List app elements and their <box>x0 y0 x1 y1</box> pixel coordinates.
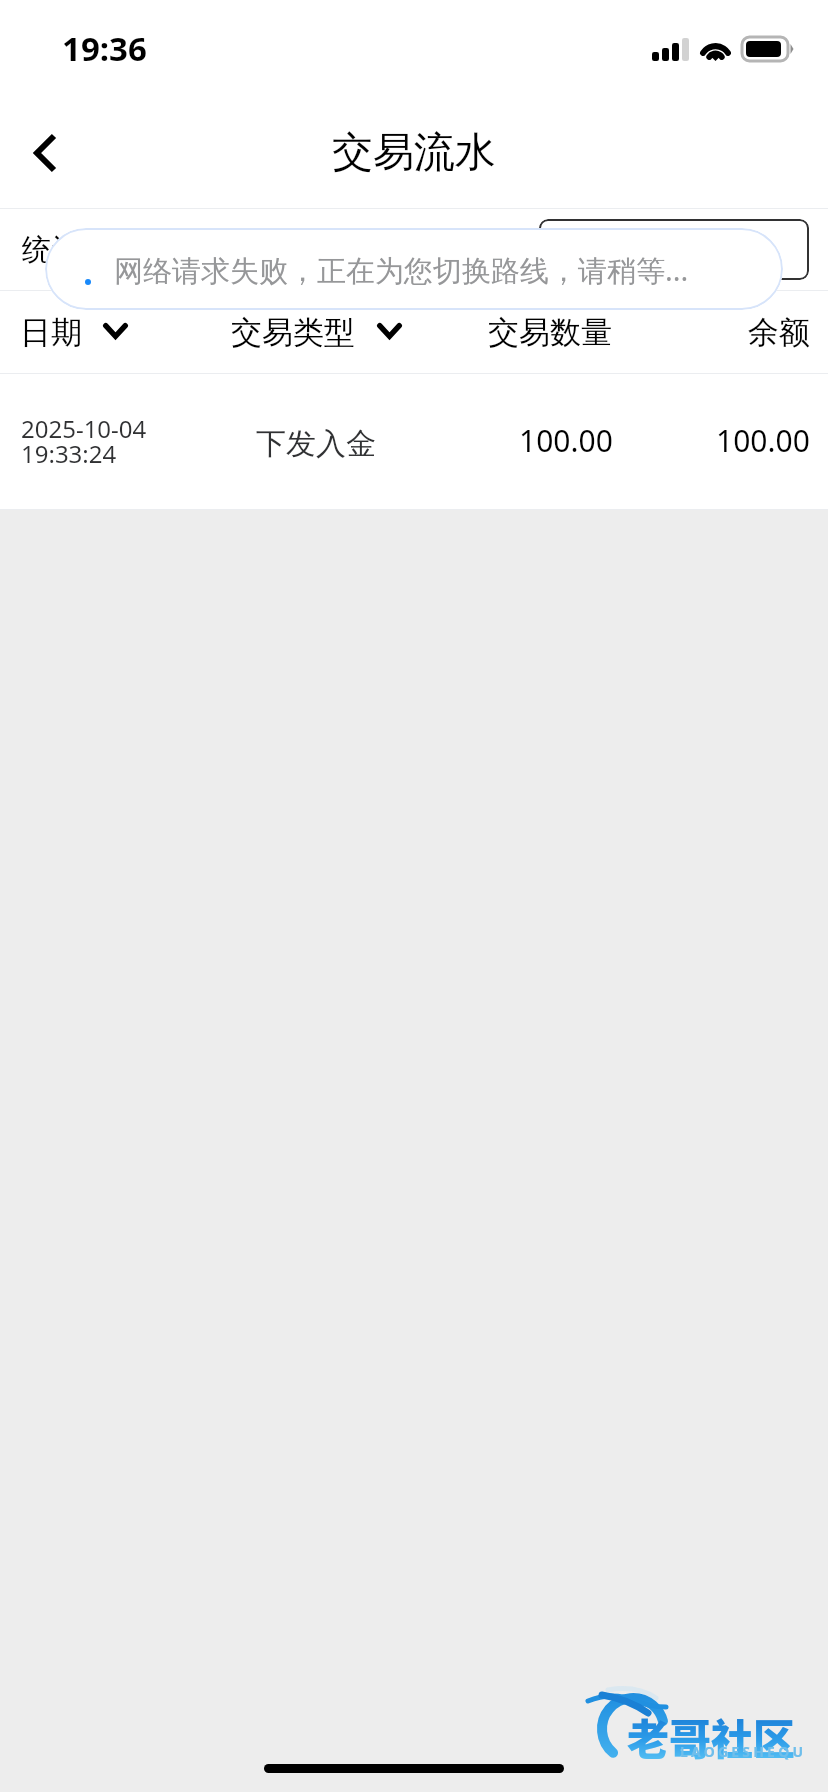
staticText: 交易类型 <box>231 313 355 352</box>
staticText: 19:36 <box>62 26 147 71</box>
staticText: 网络请求失败，正在为您切换路线，请稍等... <box>114 250 689 290</box>
staticText: 100.00 <box>519 420 613 461</box>
staticText: 下发入金 <box>256 425 376 463</box>
staticText: 老哥社区 <box>627 1706 796 1767</box>
staticText: 余额 <box>748 313 810 352</box>
button[interactable]: 日期 <box>20 313 128 352</box>
button[interactable] <box>539 219 809 280</box>
staticText: 统计 <box>22 231 82 269</box>
staticText: 100.00 <box>716 420 810 461</box>
button[interactable]: 2025-10-04 19:33:24 <box>0 374 828 509</box>
staticText: LAOGESHEQU <box>680 1742 807 1761</box>
button[interactable]: 交易类型 <box>231 313 402 352</box>
staticText: 交易流水 <box>332 127 496 179</box>
staticText: 日期 <box>20 313 82 352</box>
staticText: 交易数量 <box>488 313 612 352</box>
button[interactable]: Back <box>6 117 82 193</box>
staticText: 2025-10-04 19:33:24 <box>21 412 147 470</box>
